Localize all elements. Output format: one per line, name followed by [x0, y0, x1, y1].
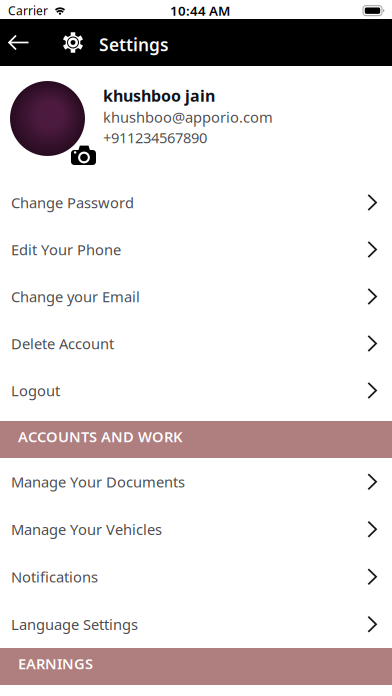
- button[interactable]: Notifications: [0, 553, 392, 600]
- staticText: Change your Email: [11, 287, 140, 306]
- staticText: Settings: [99, 33, 169, 56]
- staticText: Manage Your Documents: [11, 472, 185, 491]
- staticText: +911234567890: [103, 128, 207, 147]
- button[interactable]: Back: [8, 19, 44, 66]
- button[interactable]: Manage Your Documents: [0, 458, 392, 505]
- staticText: Edit Your Phone: [11, 240, 121, 259]
- staticText: khushboo@apporio.com: [103, 107, 273, 127]
- staticText: Language Settings: [11, 614, 138, 634]
- staticText: EARNINGS: [18, 654, 93, 673]
- button[interactable]: Delete Account: [0, 320, 392, 367]
- button[interactable]: Manage Your Vehicles: [0, 505, 392, 553]
- button[interactable]: Change profile photo: [10, 81, 96, 165]
- staticText: Logout: [11, 381, 60, 400]
- button[interactable]: Change your Email: [0, 273, 392, 320]
- button[interactable]: Logout: [0, 367, 392, 414]
- button[interactable]: Language Settings: [0, 600, 392, 648]
- button[interactable]: Edit Your Phone: [0, 226, 392, 273]
- staticText: 10:44 AM: [170, 2, 230, 19]
- staticText: Delete Account: [11, 334, 114, 353]
- staticText: ACCOUNTS AND WORK: [18, 427, 182, 446]
- button[interactable]: Change Password: [0, 179, 392, 226]
- button[interactable]: Settings options: [58, 19, 88, 66]
- staticText: khushboo jain: [103, 85, 215, 106]
- staticText: Notifications: [11, 567, 98, 586]
- staticText: Change Password: [11, 193, 134, 212]
- staticText: Manage Your Vehicles: [11, 519, 162, 539]
- staticText: Carrier: [8, 3, 48, 18]
